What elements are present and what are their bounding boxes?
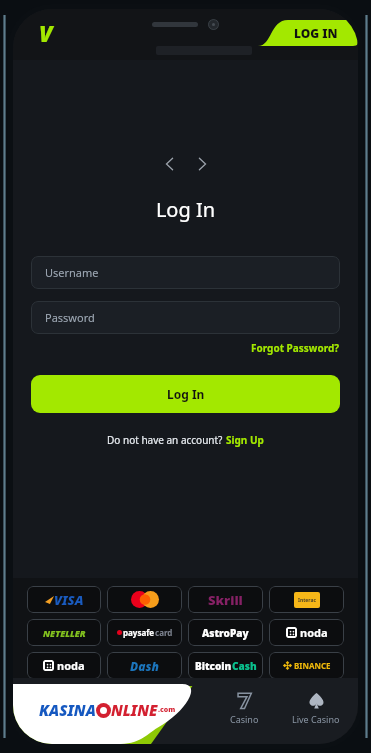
staticText: KASINA bbox=[39, 700, 96, 720]
staticText: Log In bbox=[13, 196, 358, 223]
button[interactable]: Dash bbox=[107, 652, 182, 679]
button[interactable]: Previous bbox=[161, 156, 177, 172]
staticText: card bbox=[155, 627, 173, 638]
button[interactable]: noda bbox=[269, 619, 344, 646]
staticText: Interac bbox=[298, 597, 317, 604]
staticText: Forgot Password? bbox=[251, 341, 340, 355]
staticText: LOG IN bbox=[294, 25, 338, 41]
button[interactable]: Log In bbox=[31, 375, 340, 413]
button[interactable]: Skrill bbox=[188, 586, 263, 613]
staticText: Sign Up bbox=[226, 433, 264, 447]
staticText: Dash bbox=[130, 658, 159, 674]
button[interactable]: Interac bbox=[269, 586, 344, 613]
staticText: .com bbox=[158, 705, 176, 715]
staticText: NETELLER bbox=[43, 627, 86, 639]
button[interactable]: Username bbox=[31, 256, 340, 289]
button[interactable]: AstroPay bbox=[188, 619, 263, 646]
button[interactable]: VISA bbox=[27, 586, 101, 613]
staticText: Username bbox=[45, 265, 99, 280]
staticText: Cash bbox=[232, 659, 257, 673]
staticText: noda bbox=[300, 625, 328, 640]
button[interactable]: Bitcoin bbox=[188, 652, 263, 679]
button[interactable]: paysafe bbox=[107, 619, 182, 646]
staticText: noda bbox=[57, 658, 85, 673]
button[interactable]: noda bbox=[27, 652, 101, 679]
button[interactable]: Next bbox=[195, 156, 211, 172]
button[interactable]: Casino bbox=[208, 689, 280, 727]
staticText: BINANCE bbox=[294, 660, 331, 671]
button[interactable]: LOG IN bbox=[258, 20, 358, 46]
button[interactable]: Sign Up bbox=[226, 433, 264, 447]
button[interactable] bbox=[107, 586, 182, 613]
staticText: V bbox=[39, 18, 53, 48]
button[interactable]: BINANCE bbox=[269, 652, 344, 679]
staticText: Live Casino bbox=[292, 713, 340, 725]
staticText: Skrill bbox=[208, 591, 243, 609]
staticText: VISA bbox=[54, 591, 84, 609]
button[interactable]: NETELLER bbox=[27, 619, 101, 646]
staticText: Casino bbox=[230, 713, 259, 725]
staticText: Log In bbox=[167, 386, 205, 402]
button[interactable]: Password bbox=[31, 301, 340, 334]
staticText: paysafe bbox=[123, 627, 155, 638]
button[interactable]: Live Casino bbox=[280, 689, 352, 727]
staticText: AstroPay bbox=[202, 626, 249, 640]
staticText: Bitcoin bbox=[195, 659, 232, 673]
staticText: Do not have an account? bbox=[107, 433, 226, 447]
button[interactable]: Forgot Password? bbox=[251, 341, 340, 355]
button[interactable]: V bbox=[39, 18, 53, 48]
staticText: Password bbox=[45, 310, 95, 325]
button[interactable]: KASINA bbox=[39, 700, 176, 720]
staticText: NLINE bbox=[111, 700, 158, 720]
